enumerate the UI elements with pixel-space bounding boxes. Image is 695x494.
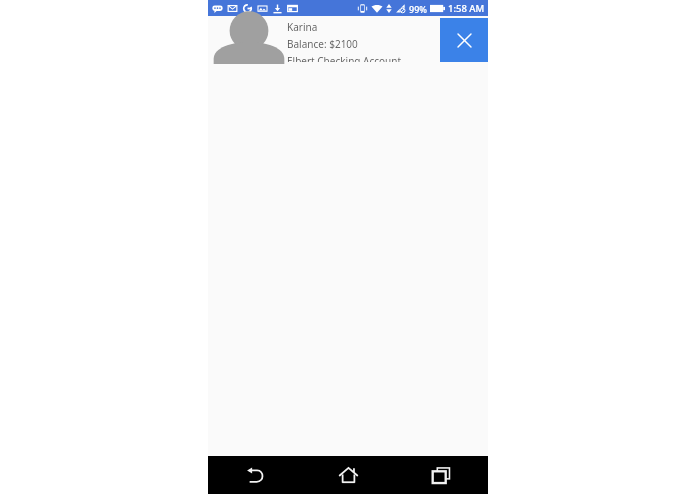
button[interactable]: Back — [208, 456, 302, 494]
staticText: 1:58 AM — [448, 2, 485, 15]
button[interactable]: Close — [440, 18, 488, 62]
button[interactable]: Home — [302, 456, 395, 494]
staticText: Elbert Checking Account — [287, 54, 402, 62]
button[interactable]: Recent apps — [395, 456, 488, 494]
staticText: 99% — [409, 3, 427, 15]
staticText: Karina — [287, 20, 318, 34]
staticText: Balance: $2100 — [287, 37, 358, 51]
button[interactable]: Karina — [208, 16, 488, 62]
